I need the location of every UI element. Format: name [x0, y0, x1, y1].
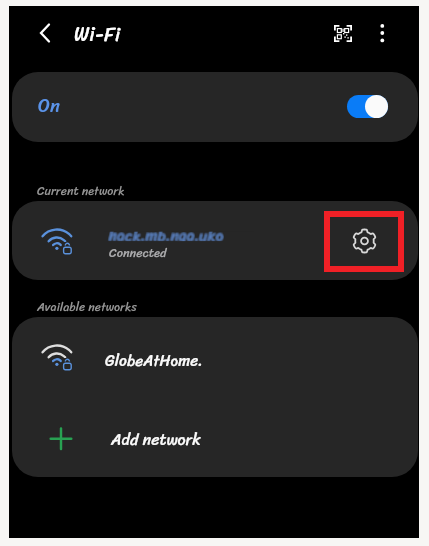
staticText: hack.mb.nga.uko [110, 223, 225, 250]
staticText: Add network [111, 425, 201, 453]
button[interactable]: On [12, 72, 418, 142]
staticText: Wi-Fi [74, 17, 121, 52]
staticText: hack.mb.nga.uko [109, 222, 224, 249]
button[interactable]: Turn Wi-Fi off [347, 95, 388, 118]
staticText: Connected [109, 242, 167, 264]
staticText: Current network [37, 180, 125, 201]
staticText: Available networks [37, 296, 137, 317]
staticText: On [38, 89, 60, 122]
staticText: hack.mb.nga.uko [108, 222, 223, 249]
staticText: hack.mb.nga.uko [110, 222, 225, 249]
staticText: GlobeAtHome. [105, 347, 203, 374]
button[interactable]: Add network [12, 397, 418, 477]
staticText: hack.mb.nga.uko [108, 221, 223, 248]
button[interactable]: Scan QR code [333, 20, 371, 58]
button[interactable]: Network settings [345, 226, 383, 264]
button[interactable]: More options [364, 20, 402, 58]
button[interactable]: Navigate up [29, 18, 71, 60]
button[interactable]: GlobeAtHome. [12, 317, 418, 397]
staticText: hack.mb.nga.uko [109, 223, 224, 250]
button[interactable]: hack.mb.nga.uko [12, 201, 418, 280]
staticText: hack.mb.nga.uko [108, 223, 223, 250]
staticText: hack.mb.nga.uko [109, 221, 224, 248]
staticText: hack.mb.nga.uko [110, 221, 225, 248]
